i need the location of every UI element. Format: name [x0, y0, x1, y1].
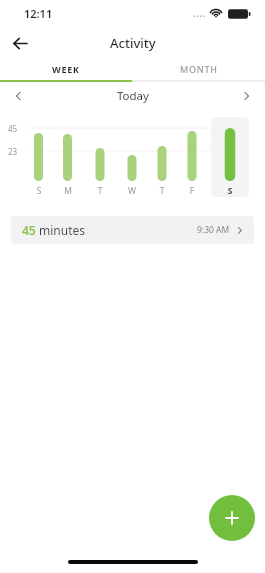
staticText: 45: [8, 123, 18, 134]
staticText: S: [223, 185, 237, 197]
staticText: WEEK: [52, 63, 80, 75]
button[interactable]: Add activity: [209, 495, 255, 541]
button[interactable]: Back: [6, 29, 34, 57]
staticText: T: [155, 185, 169, 197]
button[interactable]: Previous: [8, 85, 30, 107]
button[interactable]: Next: [235, 85, 257, 107]
staticText: minutes: [39, 222, 85, 238]
staticText: M: [61, 185, 75, 197]
button[interactable]: 45: [11, 216, 254, 244]
staticText: 12:11: [24, 6, 53, 21]
staticText: S: [32, 185, 46, 197]
button[interactable]: WEEK: [0, 58, 132, 80]
staticText: 9:30 AM: [197, 224, 230, 236]
staticText: 45: [22, 222, 36, 238]
staticText: F: [185, 185, 199, 197]
staticText: 23: [8, 146, 18, 157]
staticText: T: [93, 185, 107, 197]
staticText: MONTH: [180, 63, 218, 75]
staticText: Activity: [110, 34, 156, 52]
button[interactable]: MONTH: [132, 58, 265, 80]
staticText: Today: [117, 88, 149, 104]
staticText: W: [125, 185, 139, 197]
